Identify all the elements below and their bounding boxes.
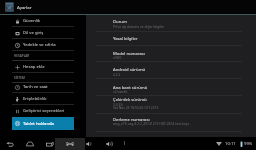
staticText: Dil ve giriş xyxy=(23,30,44,36)
staticText: Çekirdek sürümü xyxy=(113,97,147,103)
staticText: Tarih ve saat xyxy=(23,84,48,90)
staticText: Ana bant sürümü xyxy=(113,85,148,91)
staticText: 99% xyxy=(244,141,253,147)
staticText: Yedekle ve sıfırla xyxy=(23,42,56,48)
staticText: Durum xyxy=(113,19,127,25)
staticText: Ayarlar xyxy=(17,4,32,10)
staticText: Yasal bilgiler xyxy=(113,36,138,42)
staticText: Güvenlik xyxy=(23,18,41,24)
staticText: 3.4.39- xyxy=(113,102,124,106)
staticText: Geliştirici seçenekleri xyxy=(23,108,65,114)
staticText: Pil ve ağ durumu ve diğer bilgiler xyxy=(113,24,165,28)
button[interactable]: Geliştirici seçenekleri xyxy=(12,105,74,117)
button[interactable]: Android sürümü xyxy=(96,62,242,79)
staticText: 10:11 xyxy=(225,141,236,147)
button[interactable]: Recent apps xyxy=(44,137,56,150)
staticText: HESAPLAR xyxy=(14,54,30,58)
button[interactable]: Home xyxy=(24,137,36,150)
button[interactable]: Ana bant sürümü xyxy=(96,79,242,96)
button[interactable]: Çekirdek sürümü xyxy=(96,95,242,114)
staticText: SİSTEM xyxy=(14,76,25,80)
button[interactable]: Model numarası xyxy=(96,46,242,62)
staticText: Erişilebilirlik xyxy=(23,96,47,102)
staticText: v2.bandit xyxy=(113,89,128,93)
staticText: Tablet hakkında xyxy=(23,121,54,127)
button[interactable]: Dil ve giriş xyxy=(12,27,74,39)
button[interactable]: Durum xyxy=(96,15,242,32)
button[interactable]: Volume down xyxy=(83,137,95,150)
button[interactable]: Hesap ekle xyxy=(12,61,74,73)
staticText: wog_x75-usg-4.2.2_20131219 HOT-4614 test… xyxy=(113,121,189,125)
staticText: sf300 xyxy=(113,55,122,59)
staticText: Hesap ekle xyxy=(23,64,45,70)
staticText: Model numarası xyxy=(113,51,145,57)
staticText: 4.2.2 xyxy=(113,72,121,76)
button[interactable]: Derleme numarası xyxy=(96,114,242,132)
button[interactable]: Yasal bilgiler xyxy=(96,32,242,46)
button[interactable]: Tablet hakkında xyxy=(12,117,74,130)
staticText: Sat Nov 23 18:50:26 CST 2013 xyxy=(113,105,159,109)
staticText: Derleme numarası xyxy=(113,117,150,123)
button[interactable]: Volume up xyxy=(103,137,115,150)
button[interactable]: Güvenlik xyxy=(12,15,74,27)
button[interactable]: Erişilebilirlik xyxy=(12,93,74,105)
button[interactable]: Yedekle ve sıfırla xyxy=(12,39,74,51)
button[interactable]: Back xyxy=(4,137,16,150)
button[interactable]: Screenshot xyxy=(64,137,76,150)
staticText: Android sürümü xyxy=(113,67,146,73)
button[interactable]: Tarih ve saat xyxy=(12,81,74,93)
